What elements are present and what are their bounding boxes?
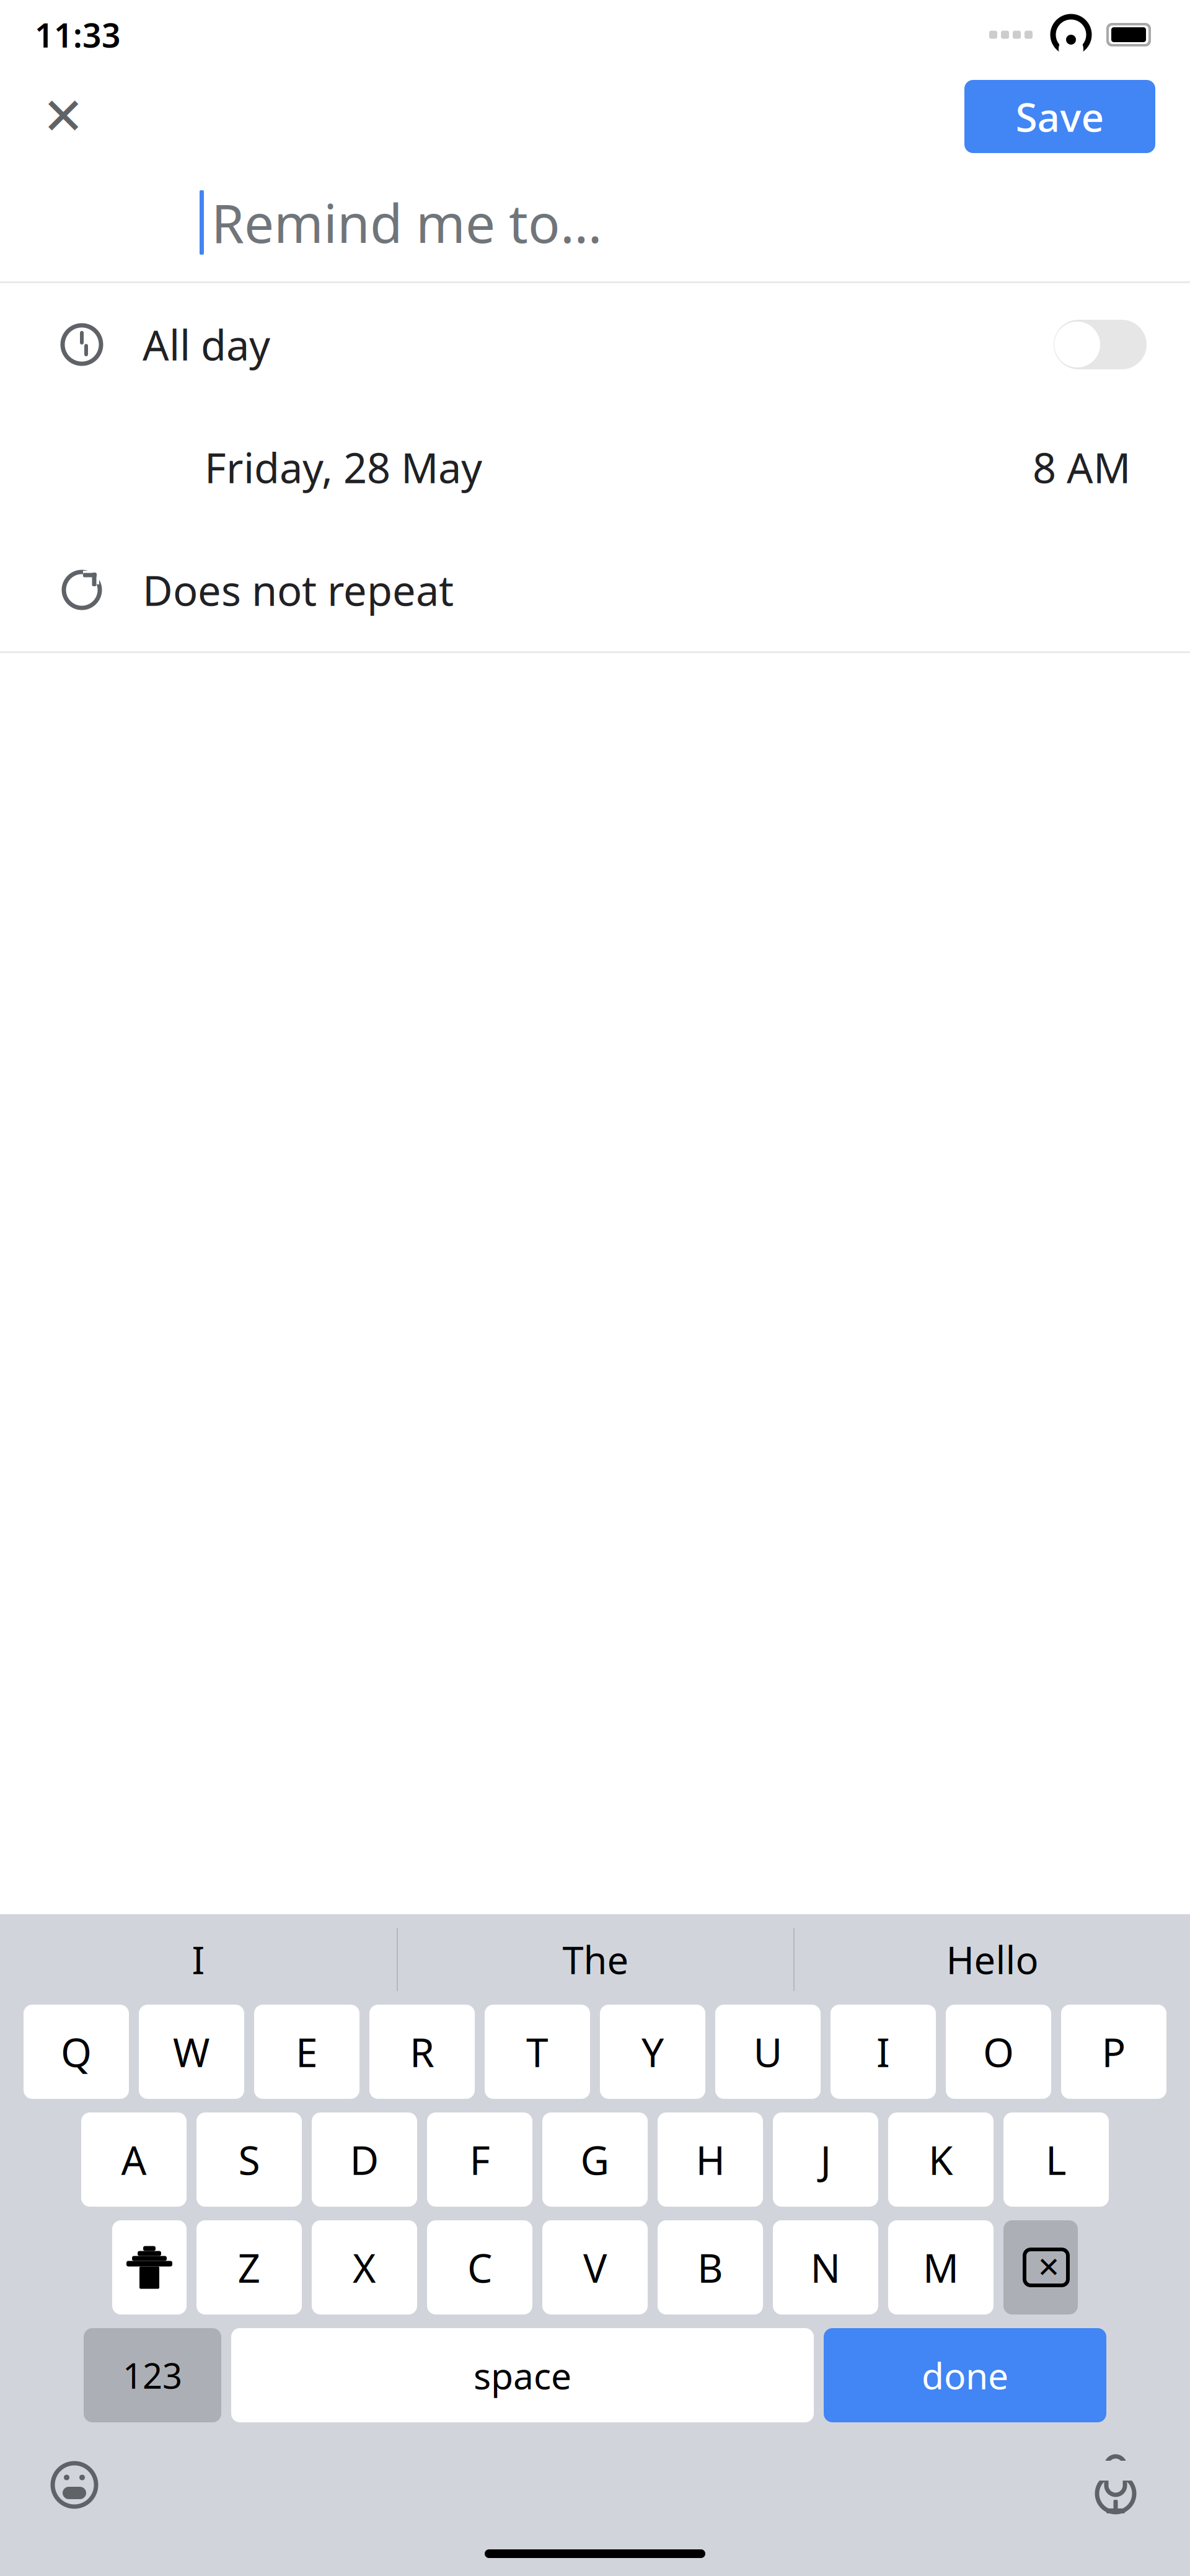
button[interactable]: X: [312, 2220, 417, 2314]
button[interactable]: Shift: [112, 2220, 187, 2314]
staticText: Z: [238, 2241, 261, 2294]
button[interactable]: L: [1003, 2112, 1109, 2207]
button[interactable]: I: [0, 1919, 397, 2000]
staticText: Y: [641, 2025, 664, 2078]
staticText: ✕: [1037, 2251, 1060, 2283]
staticText: The: [562, 1934, 629, 1985]
staticText: U: [753, 2025, 782, 2078]
button[interactable]: Y: [600, 2005, 705, 2099]
staticText: N: [810, 2241, 841, 2294]
staticText: S: [238, 2133, 260, 2186]
staticText: M: [923, 2241, 959, 2294]
staticText: 123: [123, 2352, 182, 2398]
staticText: Hello: [946, 1934, 1038, 1985]
staticText: B: [697, 2241, 723, 2294]
staticText: O: [983, 2025, 1014, 2078]
button[interactable]: V: [542, 2220, 648, 2314]
button[interactable]: R: [369, 2005, 475, 2099]
button[interactable]: Close: [26, 79, 100, 154]
staticText: Save: [1016, 90, 1104, 143]
button[interactable]: O: [946, 2005, 1051, 2099]
button[interactable]: Emoji: [31, 2448, 118, 2522]
staticText: ✕: [42, 87, 85, 146]
staticText: Friday, 28 May: [205, 440, 482, 495]
button[interactable]: All day: [0, 283, 1190, 406]
staticText: X: [353, 2241, 376, 2294]
button[interactable]: F: [427, 2112, 532, 2207]
button[interactable]: A: [81, 2112, 187, 2207]
button[interactable]: H: [658, 2112, 763, 2207]
button[interactable]: Z: [196, 2220, 302, 2314]
staticText: F: [469, 2133, 490, 2186]
button[interactable]: C: [427, 2220, 532, 2314]
button[interactable]: Q: [24, 2005, 129, 2099]
staticText: T: [526, 2025, 549, 2078]
staticText: G: [580, 2133, 610, 2186]
staticText: I: [876, 2025, 890, 2078]
staticText: Q: [61, 2025, 92, 2078]
staticText: A: [121, 2133, 147, 2186]
button[interactable]: Save: [964, 80, 1155, 153]
staticText: W: [173, 2025, 210, 2078]
staticText: Remind me to…: [211, 187, 602, 258]
staticText: E: [296, 2025, 318, 2078]
button[interactable]: Backspace: [1003, 2220, 1078, 2314]
button[interactable]: E: [254, 2005, 359, 2099]
staticText: H: [696, 2133, 725, 2186]
staticText: Does not repeat: [143, 562, 454, 617]
staticText: C: [467, 2241, 492, 2294]
button[interactable]: The: [398, 1919, 793, 2000]
button[interactable]: G: [542, 2112, 648, 2207]
button[interactable]: Friday, 28 May: [0, 406, 1190, 529]
staticText: D: [350, 2133, 379, 2186]
staticText: K: [928, 2133, 953, 2186]
button[interactable]: space: [231, 2328, 814, 2422]
staticText: J: [820, 2133, 831, 2186]
button[interactable]: S: [196, 2112, 302, 2207]
button[interactable]: done: [824, 2328, 1106, 2422]
button[interactable]: P: [1061, 2005, 1166, 2099]
staticText: P: [1102, 2025, 1126, 2078]
button[interactable]: N: [773, 2220, 878, 2314]
staticText: 11:33: [35, 13, 121, 57]
button[interactable]: I: [831, 2005, 936, 2099]
staticText: All day: [143, 317, 270, 372]
button[interactable]: Hello: [795, 1919, 1190, 2000]
staticText: space: [474, 2351, 571, 2399]
staticText: I: [192, 1934, 205, 1985]
button[interactable]: M: [888, 2220, 994, 2314]
staticText: 8 AM: [1033, 440, 1130, 495]
button[interactable]: Does not repeat: [0, 529, 1190, 651]
button[interactable]: 123: [84, 2328, 221, 2422]
staticText: L: [1046, 2133, 1067, 2186]
button[interactable]: J: [773, 2112, 878, 2207]
button[interactable]: T: [485, 2005, 590, 2099]
staticText: done: [922, 2351, 1008, 2399]
button[interactable]: U: [715, 2005, 821, 2099]
staticText: R: [410, 2025, 434, 2078]
button[interactable]: D: [312, 2112, 417, 2207]
button[interactable]: W: [139, 2005, 244, 2099]
button[interactable]: B: [658, 2220, 763, 2314]
button[interactable]: Dictate: [1072, 2448, 1159, 2522]
button[interactable]: K: [888, 2112, 994, 2207]
staticText: V: [583, 2241, 607, 2294]
